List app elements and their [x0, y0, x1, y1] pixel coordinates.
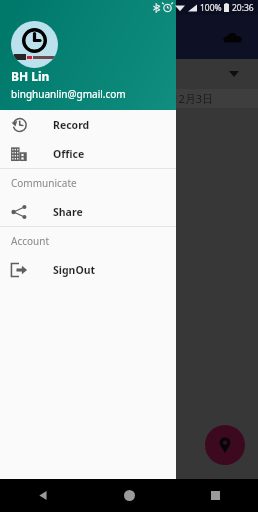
- button[interactable]: Profile photo: [11, 21, 58, 68]
- button[interactable]: Share: [0, 197, 176, 226]
- staticText: 20:36: [232, 2, 254, 14]
- button[interactable]: Home: [86, 479, 172, 512]
- button[interactable]: Upload: [218, 23, 246, 51]
- button[interactable]: SignOut: [0, 255, 176, 284]
- staticText: 2017年12月3日: [136, 91, 214, 106]
- button[interactable]: Back: [0, 479, 86, 512]
- button[interactable]: My location: [205, 425, 245, 465]
- staticText: Record: [53, 118, 90, 132]
- staticText: SignOut: [53, 263, 96, 277]
- button[interactable]: Office: [0, 139, 176, 168]
- staticText: BH Lin: [11, 68, 50, 84]
- button[interactable]: Dropdown: [224, 64, 244, 84]
- button[interactable]: Record: [0, 110, 176, 139]
- staticText: Share: [53, 205, 83, 219]
- staticText: Office: [53, 147, 85, 161]
- staticText: 100%: [200, 2, 222, 14]
- staticText: Account: [11, 234, 50, 248]
- staticText: binghuanlin@gmail.com: [11, 87, 126, 101]
- staticText: Communicate: [11, 176, 77, 190]
- button[interactable]: Recents: [172, 479, 258, 512]
